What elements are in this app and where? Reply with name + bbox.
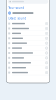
- button[interactable]: Alarm sound option: [6, 41, 50, 46]
- button[interactable]: Alarm sound option: [6, 26, 50, 31]
- button[interactable]: Alarm sound option: [6, 70, 50, 75]
- staticText: Your sound: [8, 6, 24, 10]
- button[interactable]: Alarm sound option: [6, 46, 50, 51]
- button[interactable]: Alarm sound option: [6, 31, 50, 36]
- button[interactable]: Alarm sound option: [6, 21, 50, 26]
- button[interactable]: Alarm sound option: [6, 60, 50, 65]
- button[interactable]: Alarm sound option: [6, 51, 50, 56]
- button[interactable]: Search sounds: [6, 0, 50, 5]
- button[interactable]: Selected alarm sound: [6, 11, 50, 15]
- button[interactable]: Alarm sound option: [6, 65, 50, 70]
- button[interactable]: Alarm sound option: [6, 36, 50, 41]
- button[interactable]: Alarm sound option: [6, 56, 50, 60]
- staticText: Device sound: [8, 17, 26, 20]
